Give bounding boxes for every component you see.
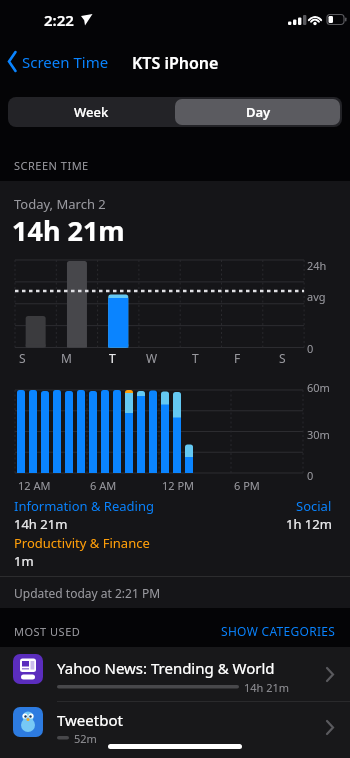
staticText: 6 PM [234,478,260,493]
staticText: 6 AM [90,478,117,493]
staticText: Today, March 2 [14,195,106,213]
staticText: W [146,350,158,366]
staticText: Screen Time [22,52,109,72]
staticText: 0 [307,341,314,356]
staticText: 14h 21m [14,515,68,533]
staticText: Social [296,497,332,515]
staticText: Yahoo News: Trending & World [57,658,275,678]
staticText: 0 [307,468,314,483]
staticText: F [234,350,241,366]
staticText: MOST USED [14,624,81,639]
button[interactable]: SHOW CATEGORIES [0,623,336,639]
staticText: 14h 21m [244,680,290,695]
staticText: Day [246,103,271,121]
button[interactable]: Tweetbot [0,702,350,754]
staticText: M [61,350,72,366]
staticText: SCREEN TIME [14,158,89,173]
staticText: 2:22 [44,10,74,30]
staticText: avg [307,289,326,304]
staticText: T [109,350,116,366]
button[interactable]: Yahoo News: Trending & World [0,647,350,701]
button[interactable]: Day [175,97,342,127]
staticText: 52m [74,731,97,746]
staticText: 12 PM [162,478,195,493]
button[interactable]: Week [8,97,175,127]
staticText: Tweetbot [57,710,123,730]
staticText: Productivity & Finance [14,534,150,552]
staticText: KTS iPhone [132,52,219,74]
staticText: Information & Reading [14,497,154,515]
staticText: T [192,350,199,366]
staticText: 60m [307,380,330,395]
staticText: 30m [307,427,330,442]
button[interactable]: Screen Time [6,48,126,76]
staticText: Week [74,103,109,121]
staticText: S [279,350,286,366]
staticText: 1h 12m [286,515,332,533]
staticText: 12 AM [18,478,51,493]
staticText: 1m [14,552,34,570]
staticText: SHOW CATEGORIES [221,623,336,639]
staticText: S [19,350,26,366]
staticText: Updated today at 2:21 PM [14,585,161,601]
staticText: 24h [307,258,327,273]
staticText: 14h 21m [12,212,125,249]
